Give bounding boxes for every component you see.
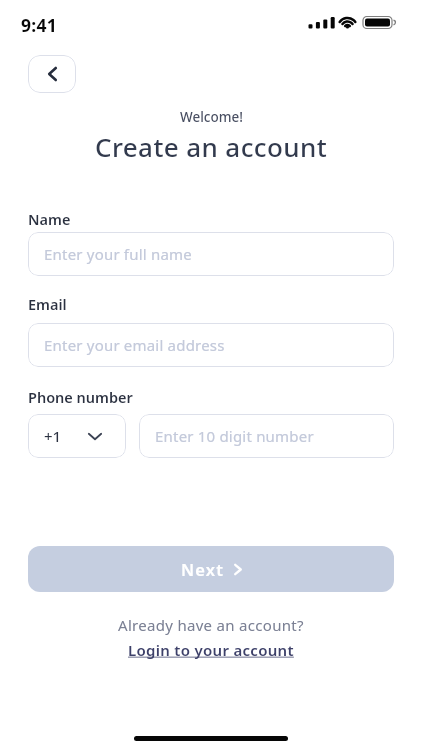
staticText: Login to your account (128, 640, 294, 660)
button[interactable]: Enter your full name (28, 232, 394, 276)
staticText: Enter your email address (44, 335, 225, 355)
button[interactable] (28, 55, 76, 93)
staticText: Phone number (28, 387, 133, 407)
staticText: +1 (44, 426, 62, 446)
staticText: Welcome! (180, 108, 243, 126)
staticText: Name (28, 209, 71, 229)
staticText: Enter 10 digit number (155, 426, 314, 446)
button[interactable]: Enter your email address (28, 323, 394, 367)
staticText: Create an account (95, 129, 328, 164)
button[interactable]: Enter 10 digit number (139, 414, 394, 458)
staticText: Already have an account? (118, 615, 304, 635)
button[interactable]: Next (28, 546, 394, 592)
button[interactable]: +1 (28, 414, 126, 458)
staticText: 9:41 (21, 13, 58, 37)
staticText: Email (28, 294, 67, 314)
staticText: Enter your full name (44, 244, 192, 264)
staticText: Next (181, 558, 225, 580)
button[interactable]: Login to your account (128, 640, 294, 660)
